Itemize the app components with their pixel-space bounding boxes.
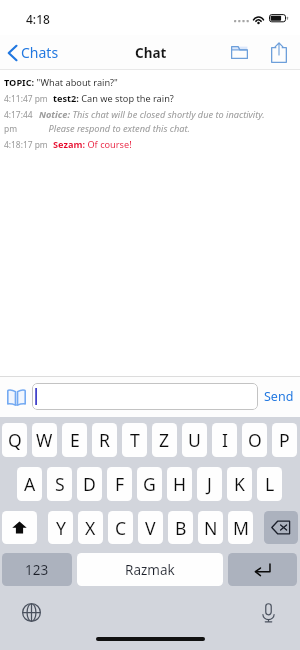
staticText: Y — [56, 516, 66, 540]
button[interactable]: R — [92, 423, 117, 457]
staticText: E — [70, 428, 80, 452]
button[interactable]: Z — [152, 423, 177, 457]
staticText: B — [175, 516, 187, 540]
button[interactable]: Switch keyboard language — [17, 598, 45, 626]
button[interactable]: M — [228, 511, 253, 544]
staticText: K — [234, 472, 245, 496]
button[interactable]: H — [167, 467, 192, 501]
button[interactable]: I — [212, 423, 237, 457]
button[interactable] — [32, 383, 258, 410]
staticText: N — [204, 516, 218, 540]
staticText: 4:11:47 pm — [4, 91, 48, 105]
staticText: 123 — [25, 561, 49, 579]
button[interactable]: Shift — [2, 511, 37, 544]
staticText: S — [55, 472, 65, 496]
button[interactable]: S — [47, 467, 72, 501]
button[interactable]: W — [32, 423, 57, 457]
button[interactable]: Backspace — [264, 511, 298, 544]
staticText: F — [115, 472, 125, 496]
staticText: Notice: This chat will be closed shortly… — [39, 107, 265, 135]
button[interactable]: T — [122, 423, 147, 457]
button[interactable]: Share — [264, 35, 294, 70]
staticText: X — [85, 516, 96, 540]
staticText: O — [248, 428, 262, 452]
button[interactable]: V — [138, 511, 163, 544]
staticText: Q — [8, 428, 22, 452]
staticText: A — [24, 472, 36, 496]
button[interactable]: Y — [48, 511, 73, 544]
staticText: L — [265, 472, 275, 496]
staticText: M — [233, 516, 249, 540]
button[interactable]: U — [182, 423, 207, 457]
button[interactable]: K — [227, 467, 252, 501]
button[interactable]: G — [137, 467, 162, 501]
staticText: Sezam: Of course! — [53, 137, 132, 151]
staticText: Chat — [135, 44, 167, 62]
button[interactable]: Razmak — [77, 553, 223, 586]
staticText: H — [173, 472, 187, 496]
staticText: G — [143, 472, 156, 496]
button[interactable]: Q — [2, 423, 27, 457]
button[interactable]: P — [272, 423, 297, 457]
staticText: C — [115, 516, 127, 540]
button[interactable]: C — [108, 511, 133, 544]
button[interactable]: J — [197, 467, 222, 501]
button[interactable]: L — [257, 467, 282, 501]
staticText: 4:18:17 pm — [4, 137, 48, 151]
staticText: test2: Can we stop the rain? — [53, 91, 174, 105]
button[interactable]: O — [242, 423, 267, 457]
staticText: I — [222, 428, 228, 452]
staticText: Razmak — [125, 561, 175, 579]
staticText: 4:18 — [26, 11, 50, 27]
button[interactable]: X — [78, 511, 103, 544]
staticText: D — [83, 472, 96, 496]
staticText: 4:17:44 pm — [4, 107, 33, 135]
button[interactable]: N — [198, 511, 223, 544]
button[interactable]: F — [107, 467, 132, 501]
staticText: T — [130, 428, 140, 452]
button[interactable]: Folder — [224, 35, 254, 70]
staticText: V — [145, 516, 156, 540]
staticText: Z — [159, 428, 170, 452]
button[interactable]: D — [77, 467, 102, 501]
button[interactable]: E — [62, 423, 87, 457]
staticText: J — [207, 472, 212, 496]
button[interactable]: Chats — [0, 35, 59, 70]
button[interactable]: Dictionary — [4, 380, 29, 413]
button[interactable]: Dictation — [254, 598, 282, 626]
staticText: P — [279, 428, 290, 452]
button[interactable]: B — [168, 511, 193, 544]
staticText: R — [99, 428, 110, 452]
staticText: U — [188, 428, 201, 452]
button[interactable]: 123 — [2, 553, 72, 586]
staticText: Send — [264, 388, 294, 405]
button[interactable]: Return — [228, 553, 297, 586]
staticText: W — [36, 428, 53, 452]
staticText: Chats — [21, 43, 59, 62]
staticText: TOPIC: "What about rain?" — [4, 75, 118, 89]
button[interactable]: A — [17, 467, 42, 501]
button[interactable]: Send — [262, 380, 296, 413]
